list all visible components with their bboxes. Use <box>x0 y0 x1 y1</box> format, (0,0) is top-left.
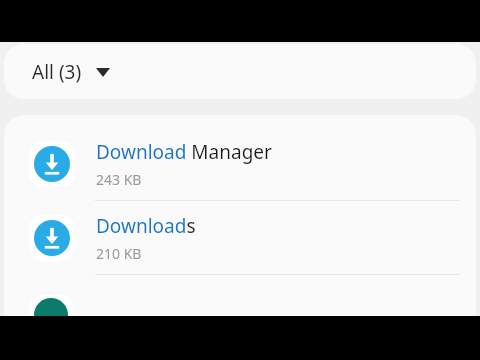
staticText: All (3) <box>32 59 82 85</box>
staticText: 243 KB <box>96 170 142 189</box>
staticText: 210 KB <box>96 244 142 263</box>
button[interactable] <box>4 275 476 315</box>
staticText: Downloads <box>96 213 196 239</box>
button[interactable]: Download Manager <box>4 127 476 200</box>
staticText: Download Manager <box>96 139 272 165</box>
button[interactable]: All (3) <box>4 44 476 99</box>
button[interactable]: Downloads <box>4 201 476 274</box>
